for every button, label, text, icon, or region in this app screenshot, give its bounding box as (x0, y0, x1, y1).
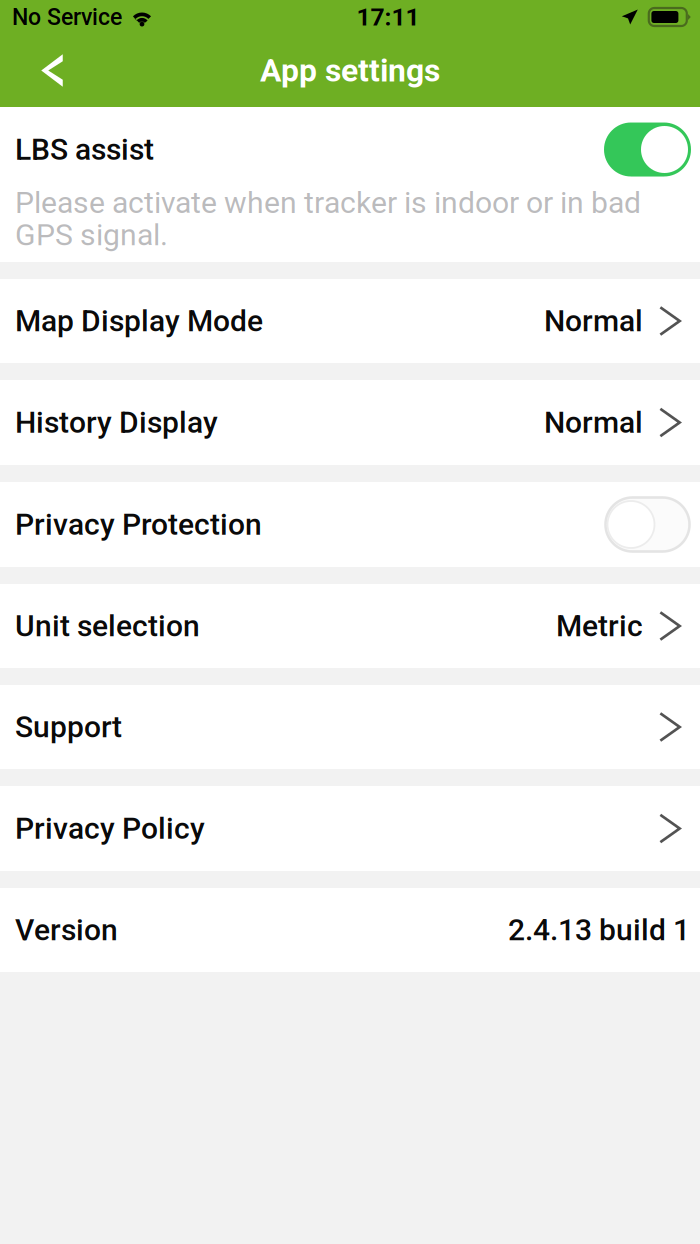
staticText: History Display (15, 405, 218, 440)
staticText: App settings (260, 52, 440, 89)
staticText: No Service (12, 3, 122, 30)
staticText: Support (15, 709, 122, 745)
staticText: Please activate when tracker is indoor o… (15, 185, 641, 253)
button[interactable]: LBS assist (604, 123, 691, 176)
staticText: Normal (544, 405, 643, 440)
staticText: Unit selection (15, 608, 200, 644)
staticText: Metric (556, 608, 643, 644)
button[interactable]: Support (0, 685, 700, 769)
staticText: Normal (544, 303, 643, 339)
button[interactable]: History Display (0, 380, 700, 465)
staticText: LBS assist (15, 132, 154, 167)
staticText: Privacy Protection (15, 507, 262, 542)
staticText: Version (15, 912, 118, 948)
staticText: Map Display Mode (15, 303, 263, 339)
button[interactable]: Unit selection (0, 584, 700, 668)
button[interactable]: Privacy Policy (0, 786, 700, 871)
button[interactable]: Back (21, 39, 83, 101)
staticText: Privacy Policy (15, 811, 205, 846)
button[interactable]: Privacy Protection (604, 498, 691, 551)
staticText: 17:11 (356, 2, 419, 31)
button[interactable]: Map Display Mode (0, 279, 700, 363)
staticText: 2.4.13 build 1 (508, 912, 690, 948)
